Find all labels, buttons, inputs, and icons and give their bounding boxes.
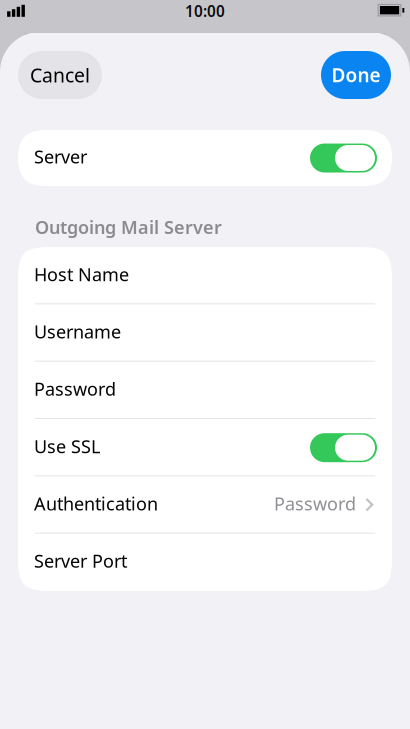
staticText: Username (34, 319, 121, 344)
staticText: Use SSL (34, 434, 100, 458)
button[interactable]: Done (321, 51, 391, 99)
staticText: Password (274, 491, 356, 516)
button[interactable]: Host Name (18, 247, 392, 304)
button[interactable]: Cancel (18, 51, 102, 99)
button[interactable]: Server Port (18, 534, 392, 591)
staticText: Authentication (34, 491, 158, 516)
button[interactable]: Authentication (18, 476, 392, 534)
button[interactable]: Password (18, 362, 392, 419)
staticText: Server (34, 144, 87, 169)
staticText: Password (34, 377, 116, 401)
staticText: Cancel (30, 62, 90, 88)
staticText: Server Port (34, 549, 127, 573)
staticText: Done (331, 62, 380, 88)
button[interactable]: Username (18, 304, 392, 362)
staticText: Outgoing Mail Server (35, 215, 222, 239)
staticText: 10:00 (185, 1, 225, 21)
staticText: Host Name (34, 262, 129, 286)
